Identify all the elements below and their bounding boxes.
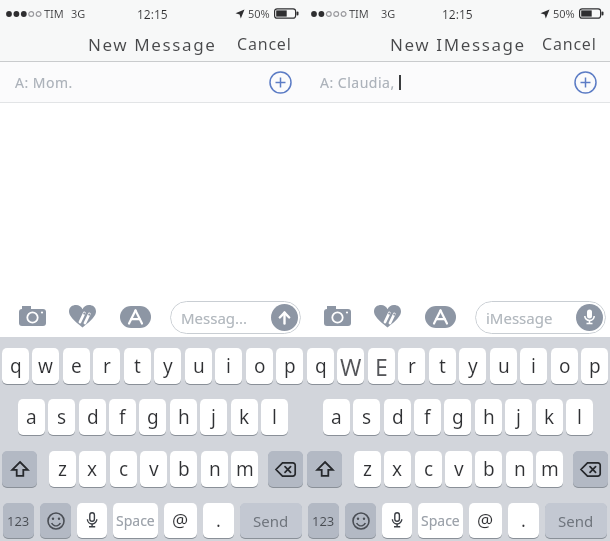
staticText: 3G	[381, 6, 396, 21]
button[interactable]: iMessage	[475, 301, 606, 334]
button[interactable]: p	[276, 348, 303, 384]
button[interactable]: Space	[113, 503, 158, 538]
button[interactable]: k	[231, 399, 258, 435]
button[interactable]	[425, 306, 456, 328]
button[interactable]: b	[170, 451, 197, 487]
staticText: s	[362, 404, 372, 430]
button[interactable]: i	[520, 348, 547, 384]
staticText: i	[226, 353, 231, 379]
staticText: v	[149, 456, 159, 482]
button[interactable]	[324, 306, 351, 326]
button[interactable]: r	[93, 348, 120, 384]
button[interactable]	[40, 503, 71, 538]
button[interactable]: q	[307, 348, 334, 384]
button[interactable]	[307, 451, 342, 487]
button[interactable]: l	[261, 399, 288, 435]
button[interactable]: h	[475, 399, 502, 435]
button[interactable]	[574, 71, 597, 94]
staticText: d	[87, 404, 99, 430]
button[interactable]: l	[566, 399, 593, 435]
button[interactable]	[2, 451, 37, 487]
button[interactable]: s	[48, 399, 75, 435]
button[interactable]	[120, 306, 151, 328]
button[interactable]: f	[109, 399, 136, 435]
staticText: k	[239, 404, 250, 430]
button[interactable]: d	[384, 399, 411, 435]
button[interactable]: Cancel	[542, 33, 597, 55]
button[interactable]: x	[384, 451, 411, 487]
button[interactable]: b	[475, 451, 502, 487]
button[interactable]: p	[581, 348, 608, 384]
button[interactable]: y	[154, 348, 181, 384]
button[interactable]	[573, 451, 608, 487]
button[interactable]: j	[200, 399, 227, 435]
button[interactable]: 123	[3, 503, 34, 538]
button[interactable]	[19, 306, 46, 326]
button[interactable]: w	[32, 348, 59, 384]
button[interactable]: s	[353, 399, 380, 435]
button[interactable]: Space	[418, 503, 463, 538]
button[interactable]: r	[398, 348, 425, 384]
staticText: o	[559, 353, 571, 379]
button[interactable]	[374, 305, 401, 328]
staticText: 12:15	[442, 6, 473, 22]
button[interactable]: y	[459, 348, 486, 384]
button[interactable]: m	[536, 451, 563, 487]
staticText: 50%	[248, 6, 270, 21]
button[interactable]: Send	[545, 503, 607, 538]
staticText: 123	[312, 512, 335, 530]
button[interactable]: j	[505, 399, 532, 435]
button[interactable]: n	[201, 451, 228, 487]
button[interactable]: c	[415, 451, 442, 487]
button[interactable]: Messag...	[170, 301, 301, 334]
button[interactable]: e	[63, 348, 90, 384]
button[interactable]: d	[79, 399, 106, 435]
button[interactable]: i	[215, 348, 242, 384]
button[interactable]: E	[368, 348, 395, 384]
button[interactable]: x	[79, 451, 106, 487]
button[interactable]: z	[49, 451, 76, 487]
staticText: m	[541, 456, 559, 482]
button[interactable]: g	[444, 399, 471, 435]
staticText: s	[57, 404, 67, 430]
button[interactable]: f	[414, 399, 441, 435]
button[interactable]: h	[170, 399, 197, 435]
staticText: .	[216, 508, 221, 533]
button[interactable]	[69, 305, 96, 328]
staticText: g	[452, 404, 464, 430]
button[interactable]: .	[203, 503, 234, 538]
button[interactable]	[382, 503, 412, 538]
button[interactable]: v	[140, 451, 167, 487]
button[interactable]: Send	[240, 503, 302, 538]
button[interactable]: v	[445, 451, 472, 487]
button[interactable]: q	[2, 348, 29, 384]
button[interactable]: Cancel	[237, 33, 292, 55]
button[interactable]: m	[231, 451, 258, 487]
button[interactable]: 123	[308, 503, 339, 538]
button[interactable]: .	[508, 503, 539, 538]
staticText: h	[483, 404, 495, 430]
button[interactable]: t	[124, 348, 151, 384]
button[interactable]: u	[490, 348, 517, 384]
button[interactable]	[268, 451, 303, 487]
button[interactable]: a	[18, 399, 45, 435]
button[interactable]: o	[551, 348, 578, 384]
staticText: A: Claudia,	[320, 73, 395, 92]
button[interactable]: g	[139, 399, 166, 435]
button[interactable]: t	[429, 348, 456, 384]
button[interactable]: c	[110, 451, 137, 487]
button[interactable]: a	[323, 399, 350, 435]
button[interactable]: @	[469, 503, 502, 538]
button[interactable]: W	[337, 348, 364, 384]
button[interactable]: @	[164, 503, 197, 538]
button[interactable]: k	[536, 399, 563, 435]
button[interactable]	[77, 503, 107, 538]
button[interactable]: z	[354, 451, 381, 487]
button[interactable]: n	[506, 451, 533, 487]
button[interactable]: o	[246, 348, 273, 384]
button[interactable]	[345, 503, 376, 538]
staticText: Messag...	[181, 308, 248, 328]
button[interactable]	[269, 71, 292, 94]
button[interactable]: u	[185, 348, 212, 384]
staticText: r	[103, 353, 111, 379]
